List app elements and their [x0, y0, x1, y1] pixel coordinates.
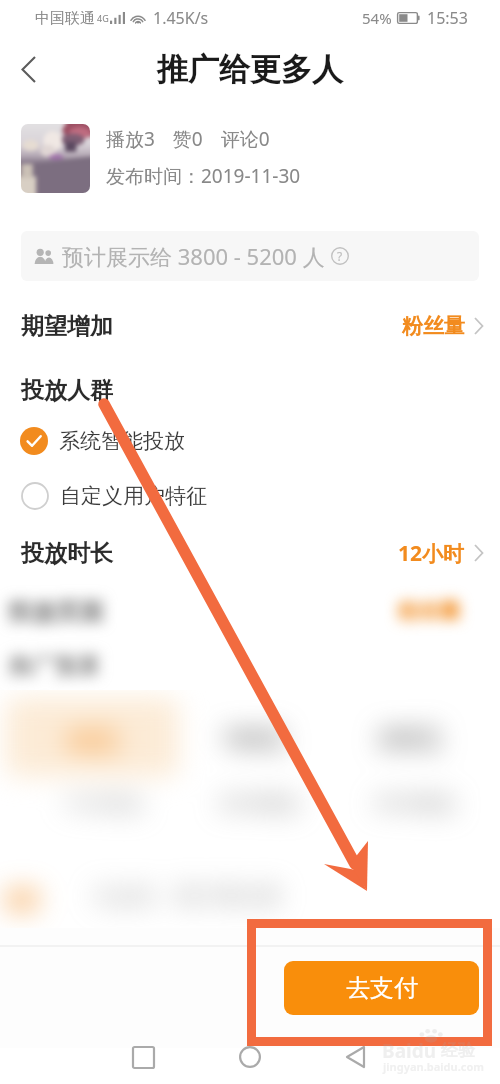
- staticText: 15:53: [427, 7, 468, 29]
- button[interactable]: 去支付: [284, 961, 479, 1015]
- staticText: 去支付: [346, 973, 418, 1003]
- staticText: 2000播放: [218, 790, 300, 816]
- staticText: 系统智能投放: [59, 428, 185, 454]
- staticText: 200元: [378, 722, 441, 753]
- staticText: 投放页面: [8, 597, 104, 627]
- staticText: 1.45K/s: [153, 7, 209, 29]
- staticText: 54%: [362, 8, 392, 28]
- button[interactable]: 期望增加: [0, 302, 500, 350]
- staticText: 发布时间：2019-11-30: [106, 163, 301, 189]
- button[interactable]: Back: [333, 1035, 377, 1079]
- staticText: 60元: [68, 724, 118, 755]
- staticText: ?: [337, 248, 343, 264]
- staticText: 播放3 赞0 评论0: [106, 126, 270, 152]
- staticText: 期望增加: [21, 312, 113, 341]
- staticText: 预计展示给 3800 - 5200 人: [62, 241, 325, 271]
- button[interactable]: Home: [228, 1035, 272, 1079]
- staticText: 投放人群: [21, 376, 113, 405]
- staticText: 自定义用户特征: [60, 483, 207, 509]
- button[interactable]: 预计展示给 3800 - 5200 人: [21, 231, 479, 281]
- button[interactable]: 自定义用户特征: [0, 473, 500, 519]
- staticText: 4500播放: [374, 790, 456, 816]
- staticText: 推广给更多人: [157, 50, 343, 89]
- staticText: 中国联通: [35, 9, 95, 28]
- button[interactable]: Back: [0, 41, 56, 97]
- staticText: 100元: [222, 722, 285, 753]
- staticText: 投放时长: [21, 539, 113, 568]
- button[interactable]: Recents: [121, 1035, 165, 1079]
- button[interactable]: [6, 698, 178, 776]
- staticText: 1000播放: [62, 790, 144, 816]
- staticText: Baidu: [382, 1038, 437, 1064]
- staticText: 粉丝量: [398, 598, 461, 624]
- button[interactable]: 系统智能投放: [0, 418, 500, 464]
- staticText: 60: [6, 880, 39, 918]
- staticText: 粉丝量: [402, 313, 465, 339]
- staticText: jingyan.baidu.com: [383, 1059, 485, 1074]
- button[interactable]: 投放时长: [0, 529, 500, 577]
- staticText: 4G: [97, 12, 109, 24]
- staticText: 经验: [441, 1040, 475, 1061]
- staticText: 推广预算: [8, 652, 100, 681]
- staticText: 12小时: [398, 539, 465, 568]
